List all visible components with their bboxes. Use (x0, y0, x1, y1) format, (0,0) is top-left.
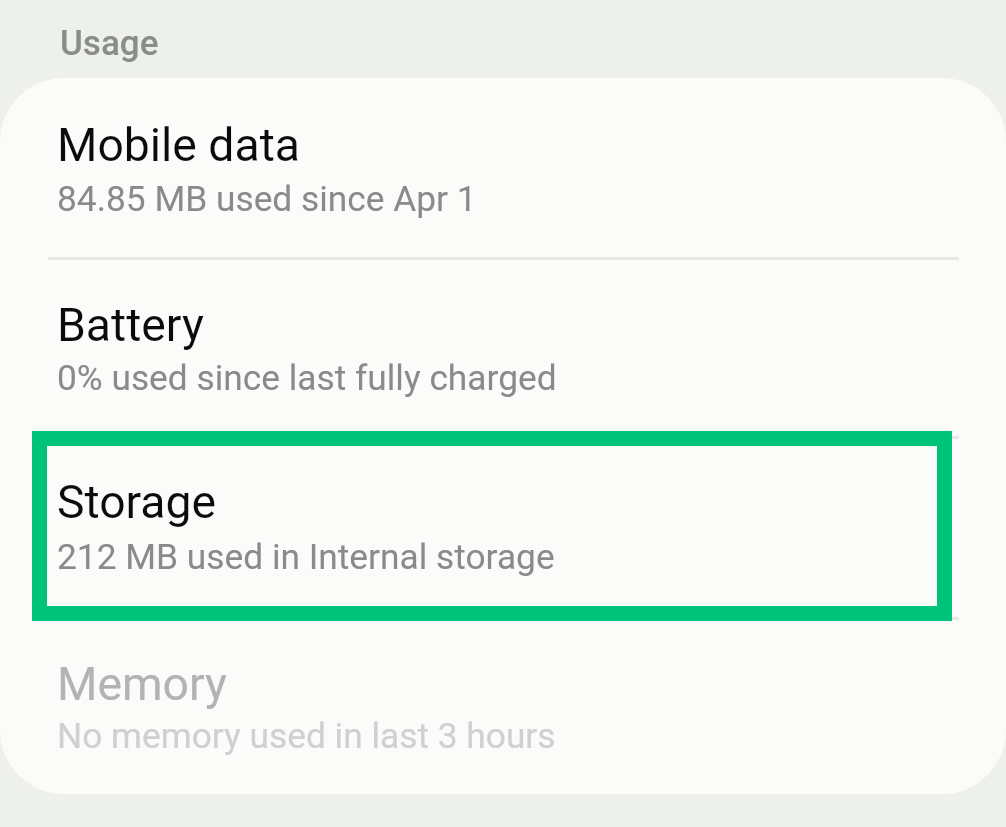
staticText: Mobile data (57, 118, 300, 172)
button[interactable]: Memory (0, 617, 1006, 794)
staticText: 84.85 MB used since Apr 1 (57, 178, 477, 219)
button[interactable]: Mobile data (0, 78, 1006, 257)
staticText: Usage (60, 23, 159, 64)
button[interactable]: Battery (0, 257, 1006, 436)
staticText: No memory used in last 3 hours (57, 715, 556, 756)
other: Storage row focused (32, 431, 952, 621)
staticText: Battery (57, 298, 204, 352)
button[interactable]: Storage (0, 436, 1006, 617)
staticText: 212 MB used in Internal storage (57, 536, 555, 577)
staticText: 0% used since last fully charged (57, 357, 557, 398)
staticText: Storage (57, 475, 217, 529)
staticText: Memory (57, 657, 227, 711)
